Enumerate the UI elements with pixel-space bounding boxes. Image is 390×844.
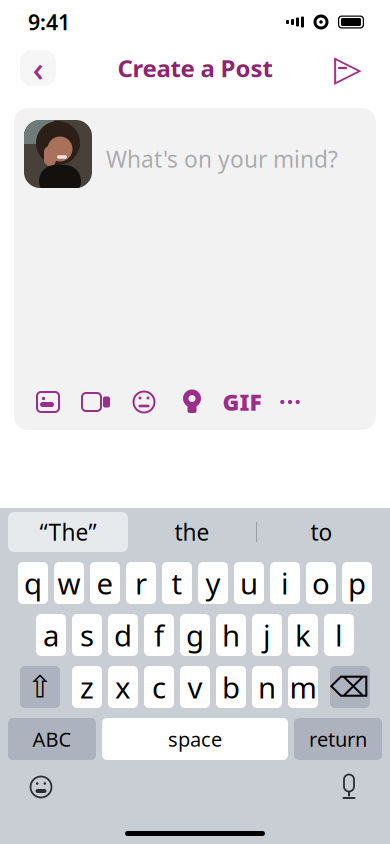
button[interactable]: m <box>288 666 318 708</box>
staticText: to <box>310 517 332 547</box>
staticText: h <box>222 615 240 654</box>
button[interactable]: Dictation <box>332 770 366 804</box>
staticText: What's on your mind? <box>106 144 338 174</box>
staticText: s <box>80 615 94 654</box>
button[interactable]: r <box>126 562 156 604</box>
button[interactable]: to <box>257 512 386 552</box>
staticText: g <box>186 615 204 654</box>
button[interactable]: s <box>72 614 102 656</box>
button[interactable]: g <box>180 614 210 656</box>
staticText: ABC <box>32 726 71 752</box>
staticText: the <box>174 517 209 547</box>
staticText: u <box>240 563 258 602</box>
button[interactable]: space <box>102 718 288 760</box>
button[interactable]: a <box>36 614 66 656</box>
button[interactable]: v <box>180 666 210 708</box>
staticText: l <box>335 615 343 654</box>
button[interactable]: e <box>90 562 120 604</box>
staticText: z <box>80 667 94 706</box>
staticText: f <box>154 615 164 654</box>
button[interactable]: f <box>144 614 174 656</box>
staticText: v <box>187 667 202 706</box>
button[interactable]: Send post <box>328 48 368 88</box>
button[interactable]: t <box>162 562 192 604</box>
staticText: GIF <box>222 387 261 417</box>
staticText: t <box>171 563 182 602</box>
button[interactable]: w <box>54 562 84 604</box>
button[interactable]: b <box>216 666 246 708</box>
button[interactable]: Delete <box>330 666 370 708</box>
staticText: r <box>135 563 147 602</box>
staticText: p <box>348 563 366 602</box>
button[interactable]: y <box>198 562 228 604</box>
button[interactable]: Shift <box>20 666 60 708</box>
button[interactable]: Add photo <box>24 382 72 422</box>
button[interactable]: p <box>342 562 372 604</box>
staticText: ⇧ <box>27 670 53 704</box>
staticText: n <box>258 667 276 706</box>
button[interactable]: d <box>108 614 138 656</box>
button[interactable]: Add emoji <box>120 382 168 422</box>
button[interactable]: n <box>252 666 282 708</box>
staticText: j <box>263 615 271 654</box>
staticText: q <box>24 563 42 602</box>
button[interactable]: Add video <box>72 382 120 422</box>
button[interactable]: c <box>144 666 174 708</box>
button[interactable]: h <box>216 614 246 656</box>
button[interactable]: l <box>324 614 354 656</box>
staticText: d <box>114 615 132 654</box>
button[interactable]: return <box>294 718 382 760</box>
staticText: w <box>57 563 80 602</box>
staticText: x <box>115 667 131 706</box>
staticText: space <box>168 726 222 752</box>
button[interactable]: Emoji keyboard <box>24 770 58 804</box>
staticText: y <box>205 563 220 602</box>
staticText: ‹ <box>32 45 43 91</box>
staticText: k <box>295 615 311 654</box>
staticText: 9:41 <box>28 8 70 36</box>
staticText: “The” <box>39 517 96 547</box>
staticText: ⌫ <box>330 671 370 703</box>
button[interactable]: x <box>108 666 138 708</box>
button[interactable]: More options <box>268 382 312 422</box>
button[interactable]: k <box>288 614 318 656</box>
button[interactable]: o <box>306 562 336 604</box>
button[interactable]: Add location <box>168 382 216 422</box>
button[interactable]: “The” <box>8 512 128 552</box>
staticText: Create a Post <box>117 52 272 84</box>
staticText: ▷ <box>334 48 362 88</box>
button[interactable]: Back <box>20 50 56 86</box>
button[interactable]: u <box>234 562 264 604</box>
button[interactable]: i <box>270 562 300 604</box>
staticText: i <box>281 563 289 602</box>
staticText: o <box>312 563 330 602</box>
staticText: m <box>289 667 316 706</box>
staticText: return <box>309 726 367 752</box>
button[interactable]: q <box>18 562 48 604</box>
staticText: c <box>152 667 166 706</box>
button[interactable]: GIF <box>216 382 268 422</box>
button[interactable]: j <box>252 614 282 656</box>
staticText: e <box>96 563 113 602</box>
button[interactable]: the <box>128 512 256 552</box>
staticText: b <box>222 667 240 706</box>
staticText: a <box>43 615 59 654</box>
button[interactable]: ABC <box>8 718 96 760</box>
button[interactable]: z <box>72 666 102 708</box>
